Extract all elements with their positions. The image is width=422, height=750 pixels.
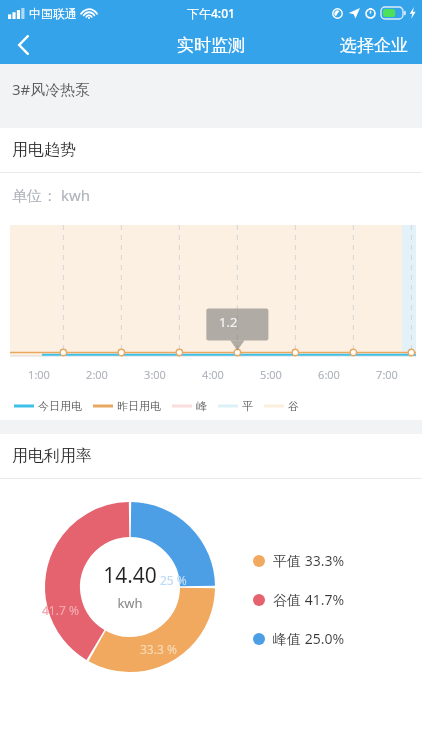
staticText: 单位： kwh	[12, 185, 90, 205]
staticText: 2:00	[86, 367, 108, 382]
staticText: 3:00	[144, 367, 166, 382]
button[interactable]: 峰	[172, 399, 207, 413]
staticText: 昨日用电	[117, 399, 161, 413]
staticText: 中国联通	[29, 6, 77, 21]
button[interactable]: 谷	[264, 399, 299, 413]
staticText: 7:00	[376, 367, 398, 382]
button[interactable]: 谷值 41.7%	[253, 590, 345, 609]
button[interactable]: 选择企业	[326, 26, 422, 64]
button[interactable]: 平	[218, 399, 253, 413]
staticText: 5:00	[260, 367, 282, 382]
button[interactable]: 3#风冷热泵	[0, 64, 422, 114]
staticText: 今日用电	[38, 399, 82, 413]
staticText: 4:00	[202, 367, 224, 382]
button[interactable]: 峰值 25.0%	[253, 629, 345, 648]
button[interactable]: 今日用电	[14, 399, 82, 413]
button[interactable]: 昨日用电	[93, 399, 161, 413]
staticText: 谷	[288, 399, 299, 413]
staticText: 1.2	[219, 313, 238, 331]
staticText: 峰值 25.0%	[273, 629, 345, 648]
button[interactable]: Back	[0, 26, 48, 64]
staticText: 选择企业	[340, 35, 408, 56]
staticText: 谷值 41.7%	[273, 590, 345, 609]
staticText: 平	[242, 399, 253, 413]
staticText: 平值 33.3%	[273, 551, 345, 570]
staticText: 41.7 %	[42, 602, 79, 618]
staticText: 6:00	[318, 367, 340, 382]
staticText: 3#风冷热泵	[12, 79, 91, 99]
button[interactable]: 平值 33.3%	[253, 551, 345, 570]
staticText: 用电趋势	[12, 140, 76, 160]
staticText: 峰	[196, 399, 207, 413]
staticText: kwh	[117, 594, 143, 612]
staticText: 33.3 %	[140, 641, 177, 657]
staticText: 用电利用率	[12, 446, 92, 466]
staticText: 1:00	[28, 367, 50, 382]
staticText: 14.40	[103, 561, 157, 590]
staticText: 实时监测	[177, 35, 245, 56]
staticText: 25 %	[160, 572, 187, 588]
staticText: 下午4:01	[187, 5, 235, 21]
